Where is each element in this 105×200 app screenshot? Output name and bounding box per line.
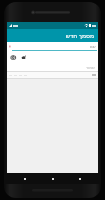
staticText: שם bbox=[90, 44, 96, 49]
button[interactable]: Attach bbox=[19, 53, 27, 61]
staticText: שמור bbox=[86, 65, 95, 70]
button[interactable]: Recent apps bbox=[74, 174, 86, 183]
staticText: מסמך חדש bbox=[65, 32, 94, 40]
button[interactable]: שם bbox=[7, 42, 98, 51]
button[interactable]: שמור bbox=[7, 63, 98, 71]
button[interactable]: Camera bbox=[9, 53, 17, 61]
button[interactable]: מסמך חדש bbox=[7, 29, 98, 42]
button[interactable]: Back bbox=[19, 174, 31, 183]
button[interactable]: Home bbox=[47, 174, 59, 183]
